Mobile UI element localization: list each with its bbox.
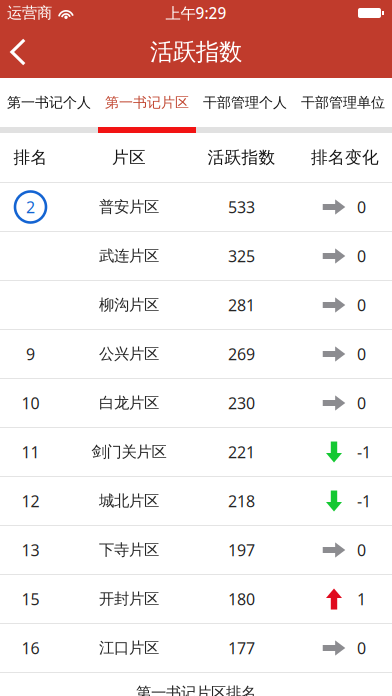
staticText: 武连片区	[99, 246, 159, 266]
button[interactable]: 12	[0, 477, 392, 526]
staticText: 197	[228, 539, 255, 561]
staticText: 白龙片区	[99, 393, 159, 413]
button[interactable]: 11	[0, 428, 392, 477]
staticText: 0	[357, 343, 366, 365]
button[interactable]: 2	[0, 183, 392, 232]
staticText: 0	[357, 294, 366, 316]
button[interactable]	[0, 281, 392, 330]
staticText: 533	[228, 196, 255, 218]
button[interactable]: 16	[0, 624, 392, 673]
button[interactable]: 干部管理个人	[196, 78, 294, 127]
staticText: 片区	[112, 147, 146, 168]
staticText: 活跃指数	[207, 147, 275, 168]
staticText: -1	[357, 490, 371, 512]
staticText: 13	[21, 539, 39, 561]
staticText: 2	[26, 196, 35, 218]
staticText: 281	[228, 294, 255, 316]
staticText: 第一书记片区	[105, 94, 189, 111]
staticText: 177	[228, 637, 255, 659]
staticText: 0	[357, 637, 366, 659]
staticText: 活跃指数	[150, 37, 242, 67]
staticText: 9	[26, 343, 35, 365]
staticText: 180	[228, 588, 255, 610]
button[interactable]: 第一书记个人	[0, 78, 98, 127]
staticText: 15	[21, 588, 39, 610]
staticText: 0	[357, 245, 366, 267]
staticText: 上午9:29	[165, 3, 226, 23]
staticText: 干部管理单位	[301, 94, 385, 111]
staticText: 325	[228, 245, 255, 267]
button[interactable]: 13	[0, 526, 392, 575]
staticText: 柳沟片区	[99, 295, 159, 315]
staticText: 0	[357, 196, 366, 218]
staticText: 开封片区	[99, 589, 159, 609]
staticText: 221	[228, 441, 255, 463]
staticText: 16	[21, 637, 39, 659]
staticText: 第一书记片区排名	[136, 683, 256, 696]
staticText: 排名	[13, 147, 47, 168]
staticText: 230	[228, 392, 255, 414]
staticText: 0	[357, 539, 366, 561]
staticText: 江口片区	[99, 638, 159, 658]
button[interactable]: 干部管理单位	[294, 78, 392, 127]
staticText: 运营商	[7, 3, 52, 23]
staticText: 第一书记个人	[7, 94, 91, 111]
staticText: 0	[357, 392, 366, 414]
staticText: 10	[21, 392, 39, 414]
button[interactable]: 9	[0, 330, 392, 379]
button[interactable]	[0, 232, 392, 281]
staticText: 城北片区	[99, 491, 159, 511]
button[interactable]: 10	[0, 379, 392, 428]
staticText: -1	[357, 441, 371, 463]
button[interactable]: 返回	[0, 30, 36, 74]
staticText: 公兴片区	[99, 344, 159, 364]
staticText: 218	[228, 490, 255, 512]
staticText: 普安片区	[99, 197, 159, 217]
staticText: 1	[357, 588, 366, 610]
button[interactable]: 第一书记片区	[98, 78, 196, 127]
staticText: 剑门关片区	[91, 442, 166, 462]
staticText: 下寺片区	[99, 540, 159, 560]
staticText: 12	[21, 490, 39, 512]
staticText: 11	[21, 441, 39, 463]
button[interactable]: 15	[0, 575, 392, 624]
staticText: 排名变化	[311, 147, 379, 168]
staticText: 269	[228, 343, 255, 365]
staticText: 干部管理个人	[203, 94, 287, 111]
